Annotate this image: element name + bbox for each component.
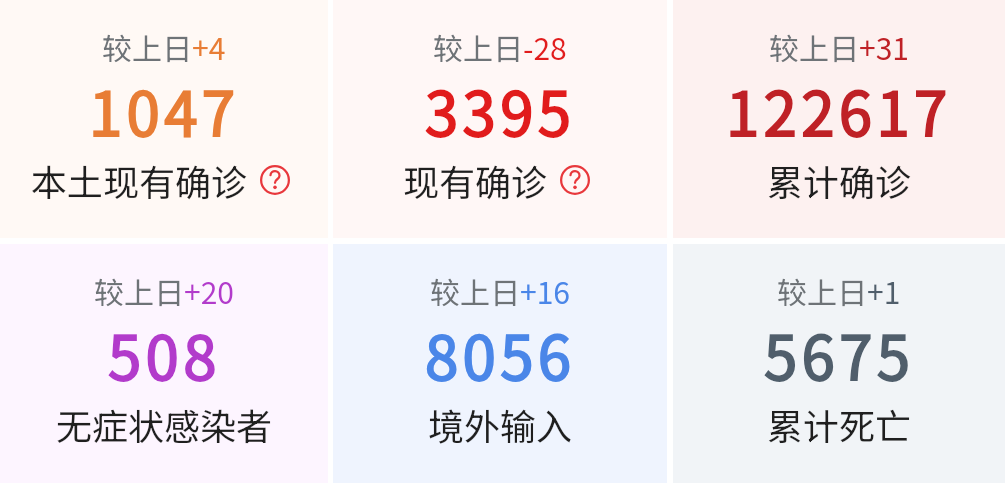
staticText: 3395 [425, 66, 576, 153]
button[interactable]: 较上日+4 [0, 0, 328, 238]
staticText: 境外输入 [428, 398, 573, 450]
button[interactable]: 较上日+1 [673, 244, 1005, 483]
staticText: 较上日-28 [433, 25, 567, 68]
button[interactable]: 较上日+31 [673, 0, 1005, 238]
other: More info [560, 165, 590, 195]
staticText: 较上日+16 [430, 269, 570, 312]
staticText: 累计确诊 [767, 154, 912, 206]
staticText: 较上日+20 [94, 269, 234, 312]
staticText: 较上日+4 [102, 25, 226, 68]
staticText: 本土现有确诊 [31, 154, 248, 206]
staticText: 5675 [764, 310, 915, 397]
staticText: 累计死亡 [767, 398, 912, 450]
button[interactable]: 较上日+20 [0, 244, 328, 483]
staticText: 现有确诊 [403, 154, 548, 206]
staticText: 508 [108, 310, 221, 397]
button[interactable]: 较上日+16 [333, 244, 667, 483]
other: More info [260, 165, 290, 195]
button[interactable]: 较上日-28 [333, 0, 667, 238]
staticText: 1047 [89, 66, 240, 153]
staticText: 8056 [425, 310, 576, 397]
staticText: 较上日+31 [769, 25, 909, 68]
staticText: 无症状感染者 [56, 398, 273, 450]
staticText: 较上日+1 [777, 269, 901, 312]
staticText: 122617 [726, 66, 952, 153]
